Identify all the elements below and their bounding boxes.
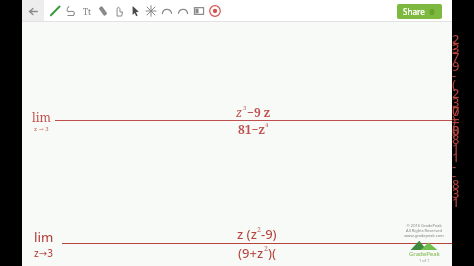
- button[interactable]: Highlighter: [63, 0, 79, 22]
- staticText: z → 3: [34, 125, 49, 133]
- staticText: z→3: [34, 246, 53, 260]
- staticText: 1 of 1: [419, 258, 430, 263]
- staticText: z: [236, 104, 243, 120]
- staticText: -9): [261, 225, 277, 243]
- button[interactable]: Share: [397, 4, 442, 19]
- button[interactable]: Record: [207, 0, 223, 22]
- staticText: 81−z: [238, 121, 265, 137]
- staticText: © 2016 GradePeak: [406, 223, 442, 228]
- button[interactable]: Hand: [111, 0, 127, 22]
- staticText: All Rights Reserved: [406, 228, 442, 233]
- button[interactable]: Eraser: [95, 0, 111, 22]
- staticText: 4: [265, 121, 269, 129]
- staticText: lim: [32, 109, 51, 125]
- button[interactable]: Select: [127, 0, 143, 22]
- staticText: (9+z: [238, 244, 264, 262]
- staticText: z (z: [237, 225, 257, 243]
- button[interactable]: Pen: [47, 0, 63, 22]
- button[interactable]: Undo: [159, 0, 175, 22]
- staticText: 3: [243, 104, 247, 112]
- staticText: GradePeak: [409, 250, 440, 258]
- staticText: 2: [257, 225, 261, 235]
- staticText: )(: [268, 244, 277, 262]
- button[interactable]: Text tool: [79, 0, 95, 22]
- staticText: Share: [403, 6, 425, 17]
- staticText: Tt: [83, 6, 91, 17]
- staticText: 2: [264, 244, 268, 254]
- staticText: −9 z: [247, 104, 271, 120]
- staticText: lim: [34, 228, 54, 246]
- button[interactable]: Back: [22, 0, 44, 22]
- button[interactable]: Redo: [175, 0, 191, 22]
- button[interactable]: Shapes: [143, 0, 159, 22]
- button[interactable]: Board: [191, 0, 207, 22]
- staticText: www.gradepeak.com: [404, 233, 444, 238]
